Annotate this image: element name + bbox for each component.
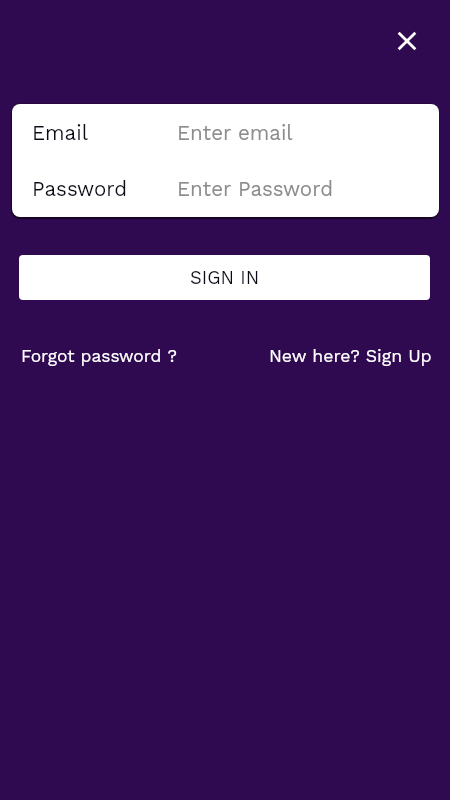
- button[interactable]: Password: [12, 161, 439, 217]
- staticText: New here? Sign Up: [269, 346, 432, 367]
- staticText: Email: [32, 121, 177, 145]
- staticText: Forgot password ?: [21, 346, 177, 366]
- button[interactable]: Email: [12, 104, 439, 161]
- staticText: Enter email: [177, 121, 293, 145]
- button[interactable]: Close: [383, 17, 431, 65]
- staticText: Enter Password: [177, 177, 334, 201]
- staticText: SIGN IN: [190, 267, 260, 289]
- button[interactable]: Forgot password ?: [13, 338, 185, 374]
- staticText: Password: [32, 177, 177, 201]
- button[interactable]: New here? Sign Up: [261, 338, 440, 375]
- button[interactable]: SIGN IN: [19, 255, 430, 300]
